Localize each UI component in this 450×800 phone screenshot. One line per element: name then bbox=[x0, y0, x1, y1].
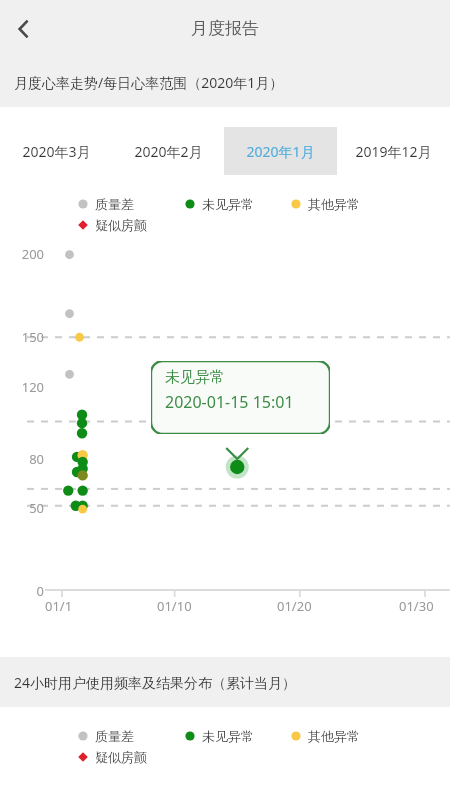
staticText: 疑似房颤 bbox=[95, 217, 147, 233]
button[interactable]: 2019年12月 bbox=[337, 127, 450, 175]
staticText: 2020年2月 bbox=[134, 142, 203, 161]
button[interactable]: 质量差 bbox=[77, 728, 134, 744]
button[interactable]: 疑似房颤 bbox=[77, 217, 147, 233]
button[interactable]: Back bbox=[0, 5, 48, 53]
staticText: 2020年3月 bbox=[22, 142, 91, 161]
staticText: 80 bbox=[29, 450, 44, 468]
staticText: 200 bbox=[21, 245, 44, 263]
button[interactable]: 其他异常 bbox=[290, 196, 360, 212]
staticText: 01/1 bbox=[45, 597, 73, 615]
staticText: 50 bbox=[29, 499, 44, 517]
button[interactable]: 质量差 bbox=[77, 196, 134, 212]
staticText: 2019年12月 bbox=[355, 142, 432, 161]
staticText: 其他异常 bbox=[308, 728, 360, 744]
staticText: 2020-01-15 15:01 bbox=[165, 391, 294, 413]
staticText: 未见异常 bbox=[202, 196, 254, 212]
staticText: 150 bbox=[21, 328, 44, 346]
staticText: 月度报告 bbox=[191, 18, 259, 39]
button[interactable]: 未见异常 bbox=[151, 361, 330, 434]
staticText: 120 bbox=[21, 378, 44, 396]
staticText: 01/10 bbox=[157, 597, 192, 615]
staticText: 月度心率走势/每日心率范围（2020年1月） bbox=[14, 73, 284, 92]
staticText: 2020年1月 bbox=[246, 142, 315, 161]
staticText: 01/30 bbox=[399, 597, 434, 615]
staticText: 疑似房颤 bbox=[95, 749, 147, 765]
staticText: 未见异常 bbox=[165, 368, 225, 387]
button[interactable]: 其他异常 bbox=[290, 728, 360, 744]
button[interactable]: 疑似房颤 bbox=[77, 749, 147, 765]
button[interactable]: 未见异常 bbox=[184, 196, 254, 212]
staticText: 其他异常 bbox=[308, 196, 360, 212]
staticText: 质量差 bbox=[95, 728, 134, 744]
staticText: 01/20 bbox=[277, 597, 312, 615]
button[interactable]: 未见异常 bbox=[184, 728, 254, 744]
staticText: 未见异常 bbox=[202, 728, 254, 744]
staticText: 24小时用户使用频率及结果分布（累计当月） bbox=[14, 673, 297, 692]
button[interactable]: 2020年3月 bbox=[0, 127, 112, 175]
button[interactable]: 2020年2月 bbox=[112, 127, 224, 175]
button[interactable]: 2020年1月 bbox=[224, 127, 337, 175]
staticText: 0 bbox=[36, 582, 44, 600]
staticText: 质量差 bbox=[95, 196, 134, 212]
